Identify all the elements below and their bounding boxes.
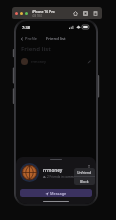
button[interactable]: Profile [20,33,38,44]
staticText: 2 Friends in common [47,175,78,179]
button[interactable]: Home [72,10,79,17]
button[interactable]: Message [20,189,92,197]
staticText: Message [50,191,67,196]
staticText: Friend list [21,45,51,53]
staticText: Friend list [46,36,66,42]
button[interactable]: Profile photo [20,163,39,182]
button[interactable]: Rotate [92,10,99,17]
staticText: Block [80,179,89,184]
button[interactable]: More options [85,163,92,170]
staticText: Profile [25,36,38,41]
other: Edit [87,60,91,64]
button[interactable]: Block [74,177,95,185]
staticText: iOS 18.0 [32,14,42,18]
staticText: 7:38 [22,25,30,30]
staticText: iPhone 16 Pro [32,9,55,14]
button[interactable]: Unfriend [74,168,95,176]
staticText: Unfriend [77,170,92,175]
button[interactable]: Settings [82,10,89,17]
staticText: rrmoney [31,59,46,64]
button[interactable]: rrmoney [21,56,91,67]
staticText: rrmoney [43,167,63,173]
